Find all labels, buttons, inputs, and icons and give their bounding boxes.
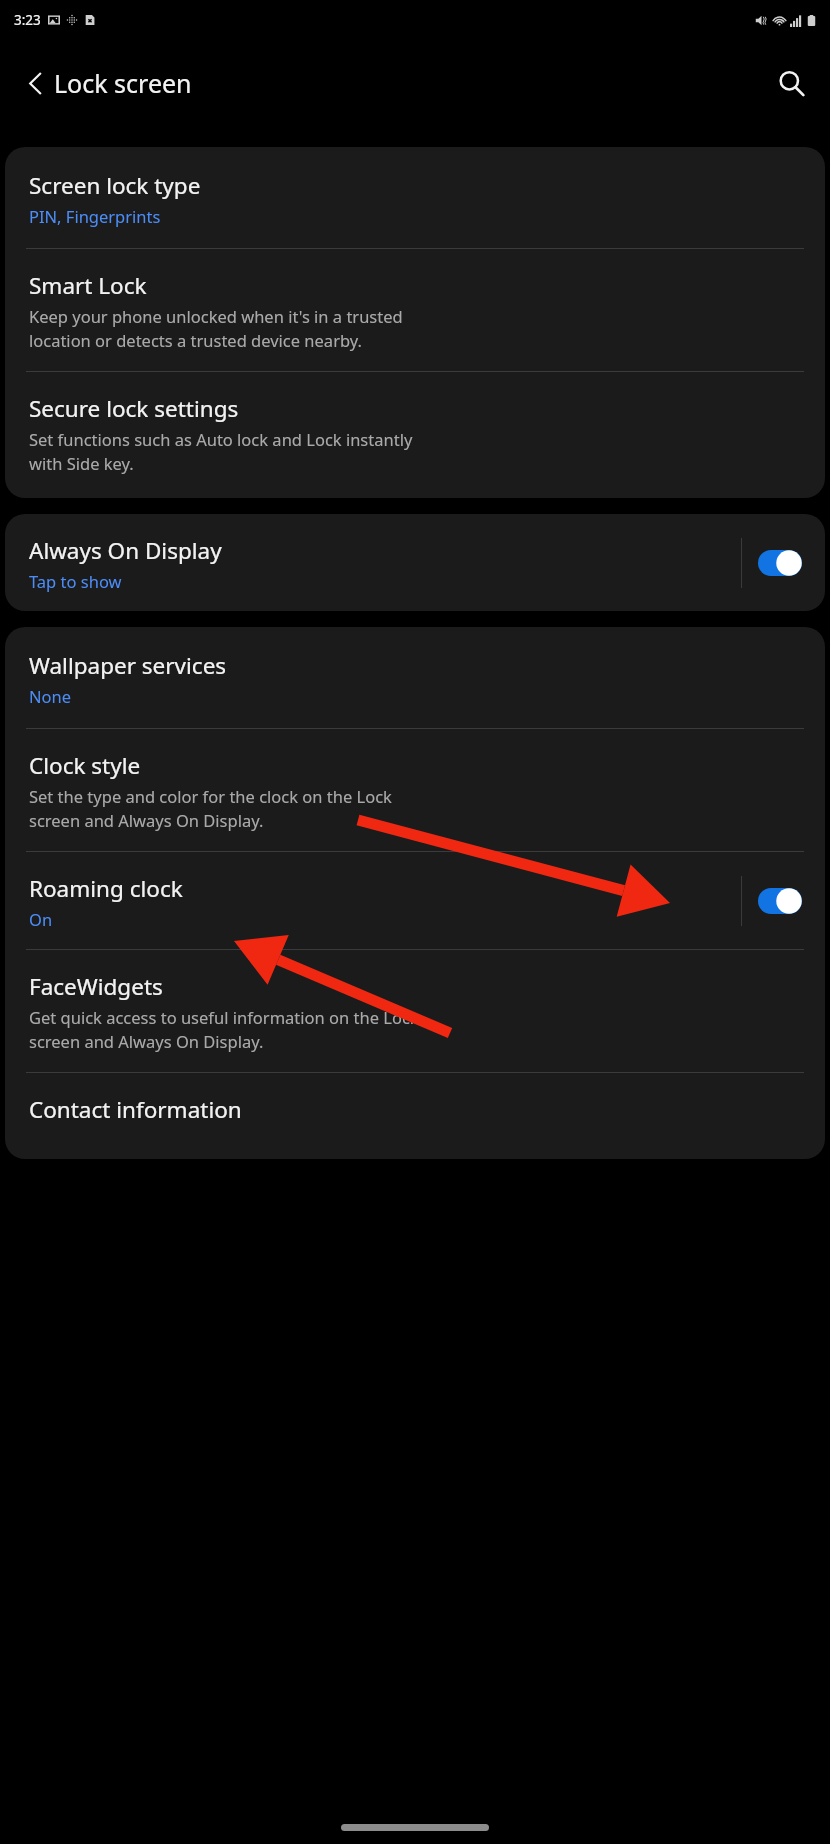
staticText: Screen lock type (29, 170, 201, 201)
button[interactable]: FaceWidgets (5, 950, 825, 1072)
staticText: Smart Lock (29, 270, 147, 301)
staticText: Set the type and color for the clock on … (29, 785, 392, 832)
button[interactable]: Search (764, 56, 818, 110)
button[interactable]: Always On Display switch, on (751, 536, 809, 590)
button[interactable]: Wallpaper services (5, 627, 825, 728)
staticText: On (29, 908, 53, 930)
button[interactable]: Roaming clock (5, 852, 825, 949)
staticText: Roaming clock (29, 873, 183, 904)
staticText: Lock screen (54, 66, 192, 100)
button[interactable]: Secure lock settings (5, 372, 825, 498)
button[interactable]: Always On Display (5, 514, 825, 611)
staticText: PIN, Fingerprints (29, 205, 161, 227)
staticText: Secure lock settings (29, 393, 239, 424)
button[interactable]: Contact information (5, 1073, 825, 1159)
staticText: Contact information (29, 1094, 242, 1125)
button[interactable]: Navigate up (9, 57, 61, 109)
button[interactable]: Screen lock type (5, 147, 825, 248)
staticText: Keep your phone unlocked when it's in a … (29, 305, 403, 352)
staticText: Wallpaper services (29, 650, 227, 681)
staticText: Clock style (29, 750, 141, 781)
staticText: Get quick access to useful information o… (29, 1006, 419, 1053)
staticText: Always On Display (29, 535, 222, 566)
button[interactable]: Smart Lock (5, 249, 825, 371)
staticText: Tap to show (29, 570, 122, 592)
staticText: Set functions such as Auto lock and Lock… (29, 428, 413, 475)
button[interactable]: Clock style (5, 729, 825, 851)
button[interactable]: Roaming clock switch, on (751, 874, 809, 928)
staticText: FaceWidgets (29, 971, 163, 1002)
staticText: None (29, 685, 72, 707)
staticText: 3:23 (14, 11, 41, 29)
